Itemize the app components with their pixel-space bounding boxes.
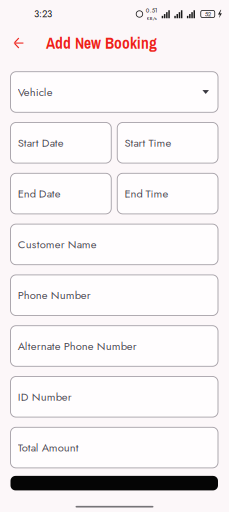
- staticText: 0.51: [146, 6, 158, 15]
- button[interactable]: Start Date: [10, 122, 111, 163]
- staticText: Start Date: [18, 135, 64, 151]
- button[interactable]: Alternate Phone Number: [10, 326, 218, 366]
- staticText: 52: [205, 10, 211, 18]
- staticText: Customer Name: [18, 236, 97, 252]
- staticText: Start Time: [124, 135, 171, 151]
- staticText: KB/s: [147, 15, 157, 22]
- staticText: Total Amount: [18, 439, 79, 456]
- staticText: Alternate Phone Number: [18, 338, 137, 354]
- button[interactable]: ID Number: [10, 376, 218, 417]
- button[interactable]: Phone Number: [10, 275, 218, 315]
- button[interactable]: Start Time: [117, 122, 218, 163]
- button[interactable]: Add New Booking: [35, 32, 157, 53]
- button[interactable]: Save Booking: [0, 476, 229, 490]
- staticText: End Date: [18, 185, 61, 202]
- staticText: Add New Booking: [46, 32, 157, 53]
- button[interactable]: Vehicle: [10, 72, 218, 112]
- button[interactable]: End Date: [10, 173, 111, 214]
- staticText: ID Number: [18, 389, 72, 405]
- staticText: Vehicle: [18, 84, 53, 100]
- button[interactable]: Total Amount: [10, 427, 218, 468]
- staticText: 3:23: [34, 7, 52, 21]
- staticText: Phone Number: [18, 287, 91, 303]
- button[interactable]: Customer Name: [10, 224, 218, 265]
- staticText: End Time: [124, 185, 168, 202]
- button[interactable]: Back: [0, 28, 35, 58]
- button[interactable]: End Time: [117, 173, 218, 214]
